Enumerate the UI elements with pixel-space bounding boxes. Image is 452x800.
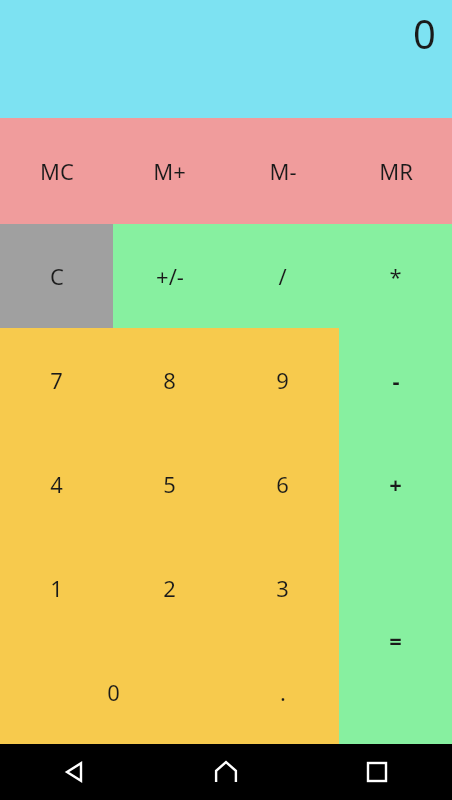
button[interactable]: 3 xyxy=(226,536,339,640)
button[interactable]: - xyxy=(339,328,452,432)
button[interactable]: M- xyxy=(226,118,339,224)
button[interactable]: + xyxy=(339,432,452,536)
button[interactable]: MR xyxy=(339,118,452,224)
staticText: 9 xyxy=(276,365,289,395)
staticText: C xyxy=(50,261,64,291)
staticText: 0 xyxy=(107,677,120,707)
button[interactable]: 6 xyxy=(226,432,339,536)
button[interactable]: 0 xyxy=(0,640,226,744)
button[interactable]: 8 xyxy=(113,328,226,432)
staticText: 5 xyxy=(163,469,176,499)
staticText: * xyxy=(389,261,402,291)
staticText: M+ xyxy=(153,156,186,186)
staticText: MR xyxy=(379,156,413,186)
staticText: M- xyxy=(269,156,297,186)
button[interactable]: 2 xyxy=(113,536,226,640)
staticText: 6 xyxy=(276,469,289,499)
staticText: - xyxy=(392,365,400,395)
button[interactable]: 0 xyxy=(0,0,452,118)
button[interactable]: M+ xyxy=(113,118,226,224)
staticText: / xyxy=(278,261,287,291)
staticText: 1 xyxy=(50,573,63,603)
staticText: 0 xyxy=(413,6,436,60)
button[interactable]: 5 xyxy=(113,432,226,536)
staticText: +/- xyxy=(156,261,184,291)
staticText: 7 xyxy=(50,365,63,395)
button[interactable]: Home xyxy=(150,744,301,800)
button[interactable]: 1 xyxy=(0,536,113,640)
staticText: 2 xyxy=(163,573,176,603)
staticText: 4 xyxy=(50,469,63,499)
button[interactable]: Back xyxy=(0,744,150,800)
button[interactable]: / xyxy=(226,224,339,328)
button[interactable]: 9 xyxy=(226,328,339,432)
button[interactable]: MC xyxy=(0,118,113,224)
button[interactable]: 7 xyxy=(0,328,113,432)
staticText: MC xyxy=(40,156,74,186)
button[interactable]: Recent apps xyxy=(301,744,452,800)
button[interactable]: 4 xyxy=(0,432,113,536)
staticText: 8 xyxy=(163,365,176,395)
button[interactable]: = xyxy=(339,536,452,744)
staticText: 3 xyxy=(276,573,289,603)
button[interactable]: C xyxy=(0,224,113,328)
staticText: = xyxy=(389,625,402,655)
button[interactable]: * xyxy=(339,224,452,328)
button[interactable]: +/- xyxy=(113,224,226,328)
staticText: + xyxy=(389,469,402,499)
staticText: . xyxy=(280,677,286,707)
button[interactable]: . xyxy=(226,640,339,744)
